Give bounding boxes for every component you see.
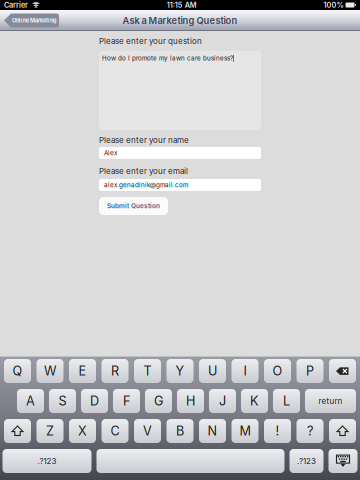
button[interactable]: R [101,359,128,383]
button[interactable]: F [113,389,140,413]
staticText: T [143,363,151,379]
button[interactable]: O [264,359,291,383]
staticText: How do I promote my lawn care business? [102,54,233,62]
button[interactable]: J [209,389,236,413]
button[interactable]: ! [264,419,291,443]
button[interactable]: alex.genadinik@gmail.com [99,179,261,191]
staticText: .?123 [297,456,316,466]
staticText: F [123,393,130,409]
staticText: Online Marketing [12,17,57,24]
staticText: C [110,423,119,439]
staticText: alex.genadinik@gmail.com [104,181,188,189]
staticText: K [250,393,259,409]
staticText: N [207,423,217,439]
button[interactable]: return [305,389,356,413]
staticText: return [318,396,342,406]
staticText: Please enter your question [99,36,202,46]
button[interactable]: ? [296,419,323,443]
staticText: ? [307,423,313,439]
staticText: Y [175,363,184,379]
button[interactable]: P [296,359,323,383]
staticText: D [90,393,99,409]
button[interactable]: S [49,389,76,413]
button[interactable]: Delete [329,359,356,383]
button[interactable]: Submit Question [99,197,168,215]
button[interactable]: A [17,389,44,413]
button[interactable]: Q [4,359,31,383]
staticText: Ask a Marketing Question [122,15,237,26]
button[interactable]: E [69,359,96,383]
button[interactable]: Online Marketing [4,13,59,27]
staticText: V [143,423,152,439]
staticText: I [243,363,246,379]
button[interactable]: W [36,359,63,383]
staticText: X [78,423,87,439]
staticText: ! [275,423,279,439]
staticText: U [208,363,217,379]
button[interactable]: .?123 [2,449,91,473]
button[interactable]: L [273,389,300,413]
staticText: O [272,363,282,379]
staticText: A [26,393,35,409]
staticText: 11:15 AM [167,1,197,9]
staticText: R [111,363,119,379]
button[interactable]: U [199,359,226,383]
staticText: Alex [104,149,117,157]
staticText: Please enter your email [99,166,188,176]
button[interactable]: Shift [4,419,31,443]
staticText: E [78,363,86,379]
button[interactable]: K [241,389,268,413]
button[interactable]: Y [166,359,193,383]
staticText: B [176,423,184,439]
staticText: H [186,393,195,409]
staticText: Carrier [4,1,28,9]
staticText: Q [12,363,22,379]
staticText: P [306,363,314,379]
button[interactable]: .?123 [289,449,323,473]
button[interactable]: How do I promote my lawn care business? [99,51,261,130]
button[interactable]: B [166,419,193,443]
button[interactable]: D [81,389,108,413]
button[interactable]: V [134,419,161,443]
button[interactable]: T [134,359,161,383]
staticText: .?123 [37,456,56,466]
button[interactable]: Shift [329,419,356,443]
button[interactable]: space [96,449,284,473]
button[interactable]: I [231,359,258,383]
staticText: Z [46,423,54,439]
button[interactable]: G [145,389,172,413]
staticText: Submit Question [107,202,160,210]
button[interactable]: Hide Keyboard [328,449,357,473]
staticText: G [154,393,163,409]
staticText: L [283,393,290,409]
staticText: 100% [323,1,343,9]
staticText: J [219,393,226,409]
button[interactable]: C [101,419,128,443]
button[interactable]: H [177,389,204,413]
button[interactable]: M [231,419,258,443]
staticText: M [239,423,250,439]
button[interactable]: Alex [99,147,261,159]
button[interactable]: Z [36,419,63,443]
button[interactable]: N [199,419,226,443]
staticText: W [44,363,56,379]
staticText: S [58,393,66,409]
staticText: Please enter your name [99,135,189,145]
button[interactable]: X [69,419,96,443]
